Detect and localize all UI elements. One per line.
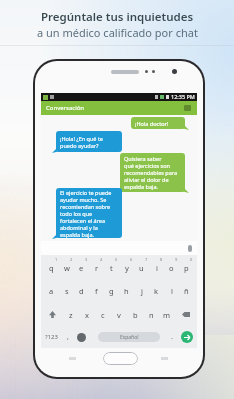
staticText: o xyxy=(169,263,174,273)
staticText: Quisiera saber xyxy=(124,155,162,162)
staticText: abdominal y la xyxy=(60,224,98,231)
staticText: 8 xyxy=(160,257,163,262)
staticText: ?123 xyxy=(45,333,58,341)
staticText: a xyxy=(49,286,54,296)
staticText: 2 xyxy=(70,257,73,262)
staticText: n xyxy=(149,310,154,320)
staticText: Pregúntale tus inquietudes xyxy=(41,9,194,25)
staticText: q xyxy=(49,263,54,273)
staticText: aliviar el dolor de xyxy=(124,176,169,183)
button[interactable]: ¡Hola doctor! xyxy=(131,117,185,129)
staticText: Conversación xyxy=(46,104,85,112)
button[interactable]: Conversación xyxy=(41,101,197,115)
staticText: espalda baja. xyxy=(60,231,94,238)
staticText: m xyxy=(163,310,171,320)
staticText: , xyxy=(67,332,69,342)
staticText: El ejercicio te puede xyxy=(60,189,112,196)
staticText: j xyxy=(141,286,143,296)
staticText: v xyxy=(117,310,121,320)
staticText: k xyxy=(154,286,159,296)
staticText: 7 xyxy=(145,257,148,262)
staticText: p xyxy=(184,263,189,273)
staticText: 12:35 PM xyxy=(171,93,195,100)
staticText: 6 xyxy=(130,257,133,262)
button[interactable]: Español xyxy=(98,332,160,342)
staticText: e xyxy=(79,263,84,273)
button[interactable]: El ejercicio te puede xyxy=(56,188,122,238)
staticText: espalda baja. xyxy=(124,183,158,190)
staticText: qué ejercicios son xyxy=(124,162,170,169)
button[interactable] xyxy=(77,333,86,342)
button[interactable] xyxy=(41,241,197,255)
staticText: y xyxy=(125,263,129,273)
staticText: 4 xyxy=(100,257,103,262)
staticText: ¡Hola doctor! xyxy=(135,120,169,127)
staticText: 3 xyxy=(85,257,88,262)
staticText: a un médico calificado por chat xyxy=(37,25,198,40)
staticText: ñ xyxy=(184,286,189,296)
button[interactable] xyxy=(181,331,193,343)
staticText: todo los que xyxy=(60,210,93,217)
staticText: r xyxy=(95,263,99,273)
staticText: f xyxy=(95,286,98,296)
button[interactable]: a xyxy=(43,286,195,299)
staticText: 1 xyxy=(55,257,58,262)
button[interactable]: ?123 xyxy=(45,329,193,345)
staticText: 9 xyxy=(175,257,178,262)
staticText: x xyxy=(85,310,89,320)
staticText: h xyxy=(124,286,129,296)
button[interactable]: Quisiera saber xyxy=(120,153,185,192)
staticText: fortalecen el área xyxy=(60,217,106,224)
staticText: d xyxy=(79,286,84,296)
button[interactable]: q xyxy=(43,263,195,276)
staticText: c xyxy=(101,310,105,320)
staticText: . xyxy=(171,332,173,342)
button[interactable]: ¡Hola! ¿En qué te xyxy=(56,131,122,152)
staticText: 5 xyxy=(115,257,118,262)
staticText: z xyxy=(69,310,73,320)
staticText: Español xyxy=(120,334,139,341)
staticText: ayudar mucho. Se xyxy=(60,196,107,203)
staticText: b xyxy=(133,310,138,320)
staticText: recomiendan sobre xyxy=(60,203,111,210)
staticText: l xyxy=(171,286,173,296)
staticText: ¡Hola! ¿En qué te xyxy=(60,135,103,142)
staticText: w xyxy=(64,263,70,273)
staticText: i xyxy=(156,263,158,273)
staticText: u xyxy=(139,263,144,273)
staticText: t xyxy=(110,263,113,273)
staticText: puedo ayudar? xyxy=(60,142,99,149)
staticText: recomendables para xyxy=(124,169,178,176)
staticText: s xyxy=(65,286,69,296)
staticText: 0 xyxy=(190,257,193,262)
staticText: g xyxy=(109,286,114,296)
button[interactable]: z xyxy=(43,308,195,321)
button[interactable] xyxy=(103,352,138,365)
